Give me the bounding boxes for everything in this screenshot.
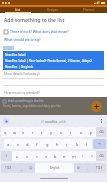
button[interactable]: c (32, 151, 42, 161)
staticText: More details (voluntary) (4, 72, 40, 76)
staticText: ?123 (96, 166, 103, 170)
staticText: f (36, 142, 38, 147)
button[interactable]: ?123 (92, 163, 106, 173)
staticText: u (60, 130, 63, 135)
staticText: Planner (83, 8, 95, 12)
button[interactable]: f (32, 139, 42, 149)
button[interactable]: Noodles (aka) | Rice (salad)~Pasta (bows… (3, 58, 104, 64)
staticText: Fruits, berries, vegetables and dairy yo… (3, 104, 61, 108)
button[interactable]: Recipes (35, 7, 71, 13)
button[interactable]: More options (99, 118, 104, 123)
staticText: English (50, 166, 60, 170)
staticText: n (63, 154, 66, 159)
staticText: Add something to the list (4, 17, 65, 24)
staticText: l (86, 142, 88, 147)
button[interactable]: w (10, 127, 19, 137)
button[interactable]: t (37, 127, 46, 137)
staticText: t (41, 130, 43, 135)
button[interactable]: b (51, 151, 60, 161)
button[interactable]: a (4, 139, 13, 149)
button[interactable]: → (93, 139, 106, 149)
button[interactable]: noodles (40, 119, 67, 123)
button[interactable]: Noodles | Noglock (3, 64, 104, 70)
button[interactable]: u (56, 127, 66, 137)
staticText: ⚙ (77, 166, 80, 170)
staticText: c (36, 154, 38, 159)
staticText: Recipes (47, 8, 59, 12)
staticText: g (46, 142, 49, 147)
button[interactable]: ! (78, 151, 87, 161)
button[interactable]: What should we bring? (4, 37, 41, 42)
button[interactable]: n (60, 151, 69, 161)
button[interactable]: ☺ (26, 163, 35, 173)
button[interactable]: English (35, 163, 74, 173)
staticText: Noodles (aka) | Rice (salad)~Pasta (bows… (5, 59, 92, 63)
button[interactable]: ⚙ (74, 163, 83, 173)
button[interactable]: m (69, 151, 78, 161)
button[interactable]: v (42, 151, 51, 161)
button[interactable]: l (82, 139, 92, 149)
button[interactable]: h (52, 139, 62, 149)
button[interactable]: s (13, 139, 22, 149)
staticText: ? (91, 154, 93, 159)
staticText: y (50, 130, 53, 135)
button[interactable]: o (76, 127, 86, 137)
button[interactable]: e (19, 127, 28, 137)
staticText: v (45, 154, 48, 159)
button[interactable]: q (1, 127, 10, 137)
staticText: i (70, 130, 72, 135)
staticText: List (15, 8, 21, 12)
button[interactable]: k (72, 139, 82, 149)
staticText: j (66, 142, 68, 147)
button[interactable]: z (12, 151, 22, 161)
button[interactable]: List (0, 7, 35, 13)
staticText: h (56, 142, 59, 147)
button[interactable]: d (22, 139, 32, 149)
button[interactable]: ⌫ (96, 127, 106, 137)
button[interactable]: Add item (91, 101, 102, 112)
staticText: ☺ (29, 166, 33, 170)
button[interactable]: Noodles (aka) (3, 52, 104, 58)
staticText: ?123 (5, 166, 12, 170)
button[interactable]: ⌫ (96, 151, 106, 161)
button[interactable]: Three o'clock? What does that mean? (4, 29, 107, 34)
staticText: with (59, 119, 66, 123)
staticText: , (21, 166, 22, 171)
staticText: ! (82, 154, 83, 159)
button[interactable]: j (62, 139, 72, 149)
button[interactable]: ?123 (1, 163, 16, 173)
staticText: d (26, 142, 29, 147)
button[interactable]: ⇧ (1, 151, 12, 161)
button[interactable]: x (22, 151, 32, 161)
button[interactable]: g (42, 139, 52, 149)
staticText: s (17, 142, 19, 147)
button[interactable]: p (86, 127, 96, 137)
staticText: Noodles (aka) (5, 53, 26, 57)
staticText: p (90, 130, 93, 135)
staticText: o (80, 130, 83, 135)
button[interactable]: Planner (71, 7, 107, 13)
staticText: q (4, 130, 7, 135)
button[interactable]: , (16, 163, 26, 173)
staticText: k (76, 142, 79, 147)
staticText: z (16, 154, 18, 159)
button[interactable]: Voice input (3, 118, 9, 124)
staticText: b (54, 154, 57, 159)
staticText: a (7, 142, 10, 147)
button[interactable]: i (66, 127, 76, 137)
staticText: w (13, 130, 17, 135)
staticText: How much is needed? (4, 90, 40, 95)
staticText: m (72, 154, 76, 159)
button[interactable]: ? (87, 151, 96, 161)
staticText: Three o'clock? What does that mean? (10, 29, 69, 34)
staticText: noodles (45, 119, 58, 123)
staticText: ⇧ (5, 154, 8, 158)
staticText: x (26, 154, 29, 159)
button[interactable]: y (46, 127, 56, 137)
staticText: → (98, 142, 101, 146)
button[interactable]: r (28, 127, 37, 137)
staticText: Add something to the list (8, 99, 44, 103)
staticText: ⌫ (99, 130, 104, 134)
staticText: . (87, 166, 88, 171)
